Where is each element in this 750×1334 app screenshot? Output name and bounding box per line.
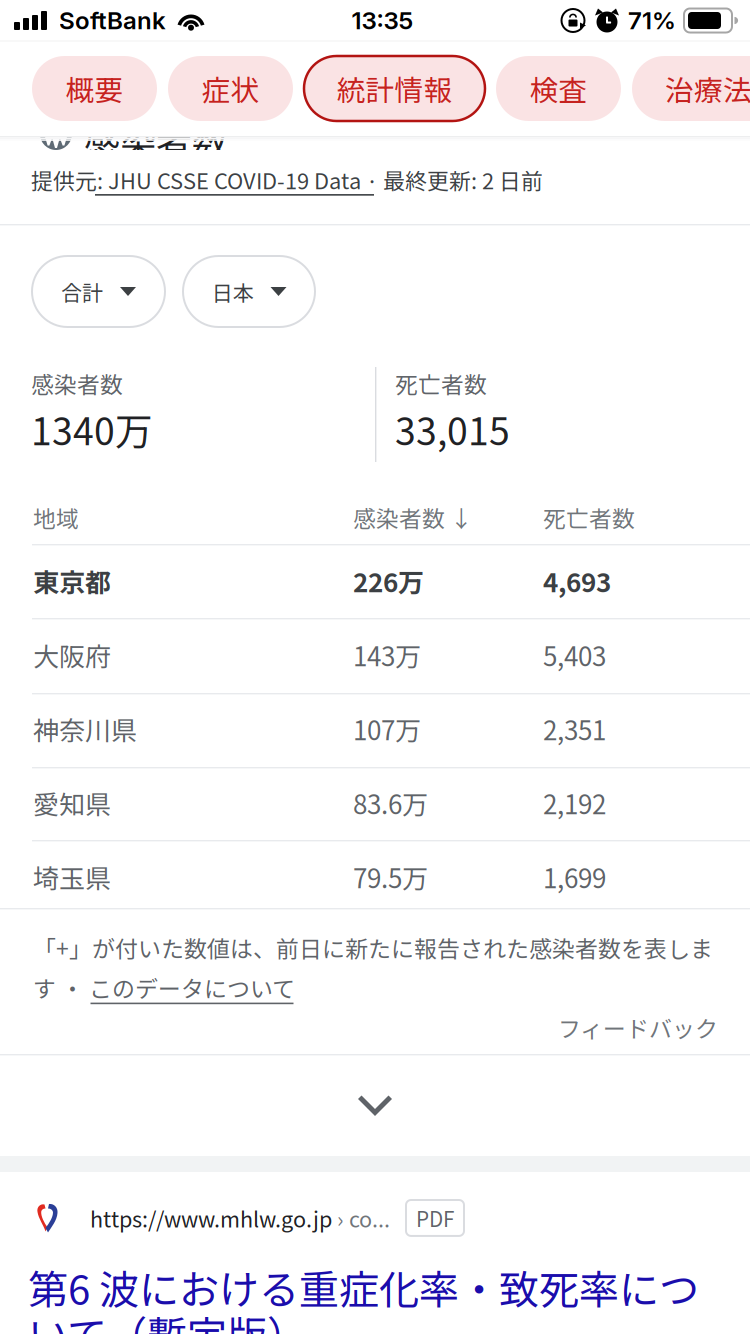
- staticText: SoftBank: [59, 6, 166, 35]
- staticText: · 最終更新: 2 日前: [361, 164, 543, 196]
- staticText: 79.5万: [353, 858, 428, 896]
- staticText: 226万: [353, 562, 424, 600]
- staticText: このデータについて: [89, 971, 295, 1004]
- button[interactable]: 第6 波における重症化率・致死率につ: [28, 1258, 699, 1316]
- staticText: https://www.mhlw.go.jp: [90, 1202, 332, 1234]
- staticText: 東京都: [33, 562, 111, 600]
- staticText: 感染者数 ↓: [353, 501, 473, 534]
- staticText: 症状: [201, 68, 259, 109]
- staticText: フィードバック: [558, 1011, 718, 1044]
- staticText: 神奈川県: [33, 710, 137, 748]
- staticText: いて（暫定版）: [28, 1304, 307, 1334]
- staticText: 感染者数: [84, 114, 228, 166]
- button[interactable]: JHU CSSE COVID-19 Data: [108, 164, 361, 196]
- staticText: 71%: [628, 6, 676, 35]
- button[interactable]: 症状: [168, 56, 293, 121]
- staticText: 107万: [353, 710, 421, 748]
- staticText: 死亡者数: [395, 367, 487, 400]
- staticText: 2,351: [543, 710, 606, 748]
- staticText: 合計: [61, 276, 103, 307]
- staticText: す ・: [33, 971, 89, 1004]
- button[interactable]: https://www.mhlw.go.jp: [32, 1200, 722, 1236]
- staticText: 143万: [353, 636, 421, 674]
- button[interactable]: 統計情報: [304, 56, 485, 121]
- staticText: JHU CSSE COVID-19 Data: [108, 164, 361, 196]
- staticText: 提供元:: [31, 164, 108, 196]
- staticText: PDF: [416, 1203, 454, 1233]
- staticText: 33,015: [395, 402, 510, 456]
- button[interactable]: このデータについて: [89, 971, 295, 1004]
- button[interactable]: 治療法: [632, 56, 750, 121]
- staticText: 地域: [33, 501, 79, 534]
- button[interactable]: 合計: [32, 256, 165, 327]
- staticText: 4,693: [543, 562, 611, 600]
- staticText: 13:35: [351, 6, 413, 35]
- staticText: 第6 波における重症化率・致死率につ: [28, 1258, 699, 1316]
- staticText: 「+」が付いた数値は、前日に新たに報告された感染者数を表しま: [33, 931, 713, 964]
- staticText: 感染者数: [31, 367, 123, 400]
- button[interactable]: 概要: [32, 56, 157, 121]
- staticText: 5,403: [543, 636, 606, 674]
- staticText: 2,192: [543, 784, 606, 822]
- staticText: 愛知県: [33, 784, 111, 822]
- staticText: 日本: [211, 276, 253, 307]
- staticText: 大阪府: [33, 636, 111, 674]
- button[interactable]: フィードバック: [558, 1011, 718, 1044]
- button[interactable]: Expand: [0, 1056, 750, 1156]
- staticText: 1340万: [31, 402, 152, 456]
- staticText: 死亡者数: [543, 501, 635, 534]
- staticText: 検査: [529, 68, 587, 109]
- staticText: 統計情報: [336, 68, 452, 109]
- button[interactable]: 日本: [183, 256, 315, 327]
- staticText: › co...: [332, 1202, 390, 1234]
- staticText: 1,699: [543, 858, 606, 896]
- button[interactable]: 検査: [496, 56, 621, 121]
- staticText: 埼玉県: [33, 858, 111, 896]
- staticText: 概要: [65, 68, 123, 109]
- staticText: 治療法: [665, 68, 750, 109]
- staticText: 83.6万: [353, 784, 428, 822]
